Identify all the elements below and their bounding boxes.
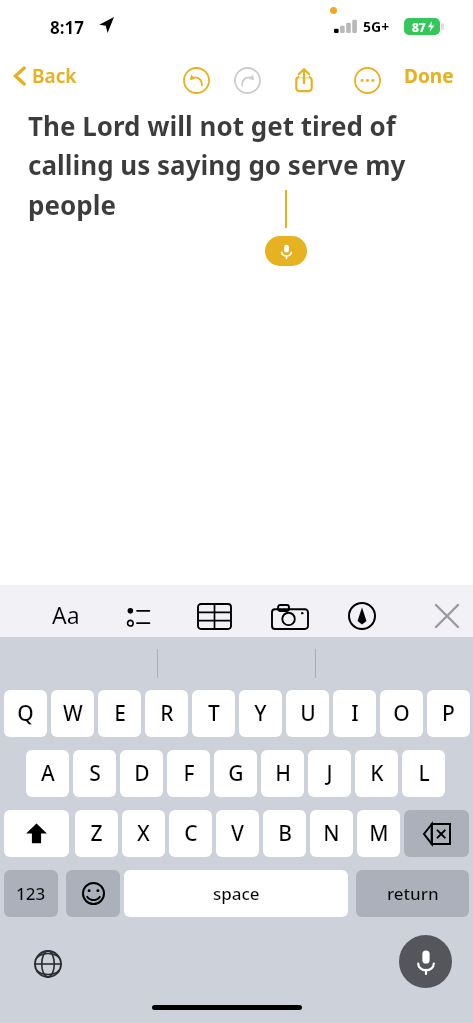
button[interactable]: Done xyxy=(404,52,454,100)
staticText: return xyxy=(387,882,439,905)
button[interactable]: Markup xyxy=(342,597,382,637)
staticText: V xyxy=(231,819,244,848)
staticText: E xyxy=(114,699,126,728)
button[interactable]: key xyxy=(66,870,120,917)
button[interactable]: Table xyxy=(195,597,235,637)
staticText: L xyxy=(418,759,430,788)
button[interactable]: P xyxy=(427,690,470,737)
staticText: Done xyxy=(404,63,454,89)
button[interactable]: G xyxy=(214,750,257,797)
staticText: The Lord will not get tired of calling u… xyxy=(28,108,438,223)
button[interactable]: key xyxy=(4,810,69,857)
button[interactable]: key xyxy=(404,810,469,857)
staticText: A xyxy=(41,759,55,788)
staticText: S xyxy=(89,759,101,788)
button[interactable]: A xyxy=(26,750,69,797)
staticText: X xyxy=(137,819,150,848)
button[interactable]: U xyxy=(286,690,329,737)
button[interactable]: J xyxy=(308,750,351,797)
staticText: U xyxy=(300,699,316,728)
staticText: I xyxy=(351,699,359,728)
staticText: O xyxy=(393,699,410,728)
staticText: N xyxy=(323,819,340,848)
button[interactable]: Q xyxy=(4,690,47,737)
staticText: W xyxy=(63,699,83,728)
staticText: H xyxy=(275,759,291,788)
button[interactable]: X xyxy=(122,810,165,857)
button[interactable]: Change keyboard xyxy=(27,943,69,985)
button[interactable]: More xyxy=(348,61,386,99)
button[interactable]: 123 xyxy=(4,870,58,917)
staticText: 8:17 xyxy=(50,16,84,39)
button[interactable]: F xyxy=(167,750,210,797)
staticText: R xyxy=(160,699,174,728)
button[interactable]: R xyxy=(145,690,188,737)
button[interactable]: O xyxy=(380,690,423,737)
staticText: G xyxy=(228,759,244,788)
button[interactable]: Redo xyxy=(228,61,266,99)
staticText: Z xyxy=(90,819,103,848)
staticText: K xyxy=(370,759,384,788)
button[interactable]: E xyxy=(98,690,141,737)
staticText: Q xyxy=(17,699,34,728)
staticText: J xyxy=(326,759,333,788)
button[interactable]: Back xyxy=(14,52,77,100)
staticText: Y xyxy=(254,699,267,728)
button[interactable]: T xyxy=(192,690,235,737)
button[interactable]: Dictation xyxy=(399,935,452,988)
button[interactable]: N xyxy=(310,810,353,857)
button[interactable]: I xyxy=(333,690,376,737)
staticText: D xyxy=(134,759,150,788)
button[interactable]: H xyxy=(261,750,304,797)
button[interactable]: Share xyxy=(285,61,323,99)
button[interactable]: V xyxy=(216,810,259,857)
button[interactable]: L xyxy=(402,750,445,797)
button[interactable]: S xyxy=(73,750,116,797)
button[interactable]: D xyxy=(120,750,163,797)
button[interactable]: Y xyxy=(239,690,282,737)
button[interactable]: W xyxy=(51,690,94,737)
staticText: 5G+ xyxy=(363,17,390,36)
staticText: T xyxy=(208,699,220,728)
button[interactable]: B xyxy=(263,810,306,857)
button[interactable]: K xyxy=(355,750,398,797)
staticText: P xyxy=(442,699,455,728)
button[interactable]: Close xyxy=(428,597,466,635)
button[interactable]: return xyxy=(356,870,469,917)
button[interactable]: Checklist xyxy=(122,597,162,637)
button[interactable]: M xyxy=(357,810,400,857)
button[interactable]: C xyxy=(169,810,212,857)
staticText: Back xyxy=(32,63,77,89)
button[interactable]: Camera xyxy=(270,597,310,637)
button[interactable]: Z xyxy=(75,810,118,857)
staticText: space xyxy=(213,882,260,905)
button[interactable]: space xyxy=(124,870,348,917)
staticText: 87 xyxy=(412,19,426,35)
staticText: C xyxy=(184,819,198,848)
staticText: F xyxy=(183,759,195,788)
staticText: B xyxy=(278,819,292,848)
button[interactable]: Aa xyxy=(52,599,80,630)
button[interactable]: Dictate xyxy=(265,236,307,266)
staticText: M xyxy=(369,819,389,848)
button[interactable]: Undo xyxy=(177,61,215,99)
staticText: 123 xyxy=(16,882,46,905)
